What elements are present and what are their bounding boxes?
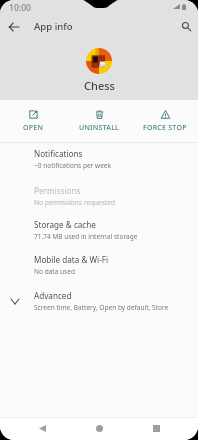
staticText: Notifications xyxy=(34,148,83,159)
staticText: No data used xyxy=(34,267,75,276)
button[interactable]: Permissions xyxy=(0,181,198,216)
staticText: OPEN xyxy=(23,123,44,133)
button[interactable]: UNINSTALL xyxy=(66,108,132,135)
staticText: App info xyxy=(34,20,73,33)
staticText: Permissions xyxy=(34,185,81,196)
button[interactable]: Navigate up xyxy=(3,16,24,37)
staticText: ~0 notifications per week xyxy=(34,161,112,170)
button[interactable]: Storage & cache xyxy=(0,215,198,250)
staticText: Advanced xyxy=(34,290,72,301)
staticText: UNINSTALL xyxy=(79,123,120,133)
staticText: No permissions requested xyxy=(34,198,115,207)
button[interactable]: Recent apps xyxy=(145,417,167,439)
button[interactable]: FORCE STOP xyxy=(132,108,198,135)
staticText: 71.74 MB used in internal storage xyxy=(34,232,138,241)
staticText: Chess xyxy=(84,78,115,93)
staticText: Mobile data & Wi‑Fi xyxy=(34,254,109,265)
button[interactable]: Back xyxy=(31,417,53,439)
staticText: Screen time, Battery, Open by default, S… xyxy=(34,303,169,312)
button[interactable]: Home xyxy=(88,417,110,439)
button[interactable]: Notifications xyxy=(0,144,198,179)
button[interactable]: Advanced xyxy=(0,286,198,321)
staticText: 10:00 xyxy=(9,2,32,14)
staticText: FORCE STOP xyxy=(143,123,187,133)
staticText: Storage & cache xyxy=(34,219,96,230)
button[interactable]: OPEN xyxy=(0,108,66,135)
button[interactable]: Search xyxy=(175,15,197,37)
button[interactable]: Mobile data & Wi‑Fi xyxy=(0,250,198,285)
